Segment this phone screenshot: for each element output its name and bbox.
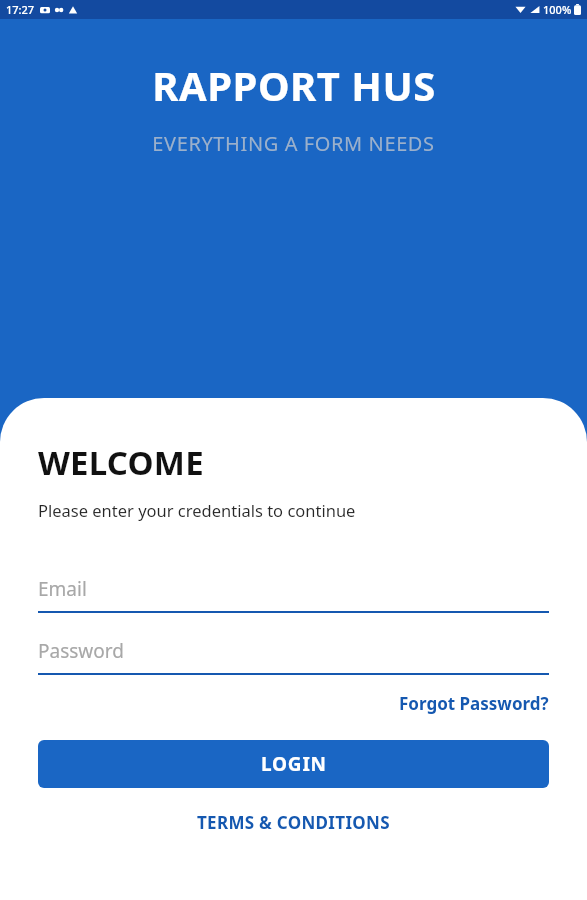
button[interactable]: TERMS & CONDITIONS: [191, 807, 396, 838]
staticText: TERMS & CONDITIONS: [197, 811, 390, 834]
staticText: WELCOME: [38, 440, 204, 485]
staticText: 17:27: [6, 2, 35, 17]
staticText: Forgot Password?: [399, 692, 549, 715]
staticText: 100%: [543, 2, 572, 17]
staticText: Please enter your credentials to continu…: [38, 499, 356, 521]
staticText: Email: [38, 576, 87, 602]
staticText: LOGIN: [261, 751, 327, 777]
button[interactable]: Forgot Password?: [399, 689, 549, 718]
staticText: Password: [38, 638, 124, 664]
button[interactable]: LOGIN: [38, 740, 549, 788]
button[interactable]: Email: [38, 576, 549, 613]
staticText: RAPPORT HUS: [152, 58, 436, 112]
button[interactable]: Password: [38, 638, 549, 675]
staticText: EVERYTHING A FORM NEEDS: [152, 130, 435, 157]
